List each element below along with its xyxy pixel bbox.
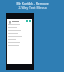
staticText: Mr Kartikk - Remove xyxy=(16,1,49,6)
button[interactable] xyxy=(7,23,32,26)
button[interactable] xyxy=(7,44,32,47)
button[interactable] xyxy=(7,32,32,35)
button[interactable] xyxy=(7,26,32,29)
button[interactable] xyxy=(7,41,32,44)
staticText: 2-Way Text Messa xyxy=(18,5,47,10)
button[interactable] xyxy=(7,35,32,38)
button[interactable] xyxy=(7,29,32,32)
button[interactable]: Menu xyxy=(8,20,11,23)
button[interactable] xyxy=(7,38,32,41)
